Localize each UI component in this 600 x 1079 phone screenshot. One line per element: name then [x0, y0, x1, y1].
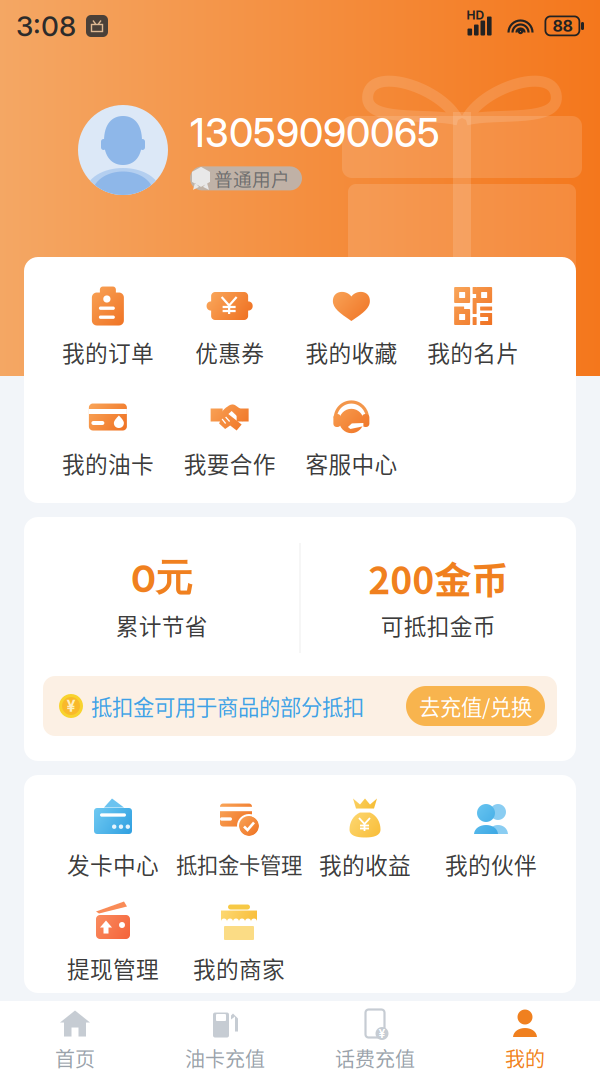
button[interactable]: 我的伙伴: [428, 797, 554, 876]
button[interactable]: 我的名片: [412, 285, 534, 364]
button[interactable]: 我的订单: [47, 285, 169, 364]
staticText: 88: [552, 16, 572, 36]
button[interactable]: 我要合作: [169, 396, 291, 475]
button[interactable]: 去充值/兑换: [406, 686, 545, 726]
staticText: 13059090065: [190, 110, 440, 156]
button[interactable]: ¥: [300, 1001, 450, 1079]
staticText: 我的收益: [319, 848, 411, 880]
button[interactable]: 我的收益: [302, 797, 428, 876]
staticText: ¥: [66, 696, 75, 716]
staticText: 发卡中心: [67, 848, 159, 880]
button[interactable]: 我的收藏: [290, 285, 412, 364]
staticText: 话费充值: [335, 1043, 415, 1072]
staticText: 首页: [55, 1043, 95, 1072]
button[interactable]: 我的油卡: [47, 396, 169, 475]
staticText: HD: [466, 8, 484, 22]
staticText: 可抵扣金币: [381, 609, 496, 641]
staticText: 去充值/兑换: [419, 691, 532, 721]
staticText: 我的商家: [193, 952, 285, 984]
button[interactable]: 提现管理: [50, 901, 176, 980]
button[interactable]: 我的商家: [176, 901, 302, 980]
staticText: 0元: [131, 554, 192, 601]
staticText: 提现管理: [67, 952, 159, 984]
staticText: 优惠券: [195, 336, 264, 368]
staticText: 3:08: [16, 9, 76, 43]
button[interactable]: 发卡中心: [50, 797, 176, 876]
staticText: 200金币: [368, 551, 508, 605]
staticText: 我的: [505, 1043, 545, 1072]
staticText: 普通用户: [214, 165, 290, 192]
staticText: 抵扣金可用于商品的部分抵扣: [91, 691, 364, 721]
staticText: 我的伙伴: [445, 848, 537, 880]
button[interactable]: 油卡充值: [150, 1001, 300, 1079]
button[interactable]: 抵扣金卡管理: [176, 797, 302, 876]
staticText: 抵扣金卡管理: [176, 849, 302, 879]
staticText: 我的订单: [62, 336, 154, 368]
staticText: ¥: [378, 1026, 385, 1041]
button[interactable]: 客服中心: [290, 396, 412, 475]
staticText: 我要合作: [184, 447, 276, 479]
button[interactable]: 首页: [0, 1001, 150, 1079]
staticText: 我的名片: [427, 336, 519, 368]
button[interactable]: 优惠券: [169, 285, 291, 364]
staticText: 我的油卡: [62, 447, 154, 479]
staticText: 客服中心: [305, 447, 397, 479]
button[interactable]: 我的: [450, 1001, 600, 1079]
staticText: 油卡充值: [185, 1043, 265, 1072]
staticText: 我的收藏: [305, 336, 397, 368]
staticText: 累计节省: [116, 609, 208, 641]
